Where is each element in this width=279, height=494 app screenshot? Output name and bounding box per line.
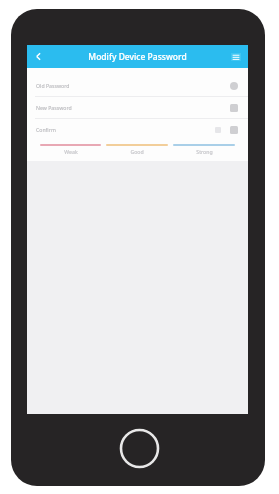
button[interactable]: Strong <box>173 148 235 155</box>
button[interactable]: Confirm <box>27 119 248 140</box>
staticText: New Password <box>36 104 72 111</box>
button[interactable]: Show password <box>227 123 240 136</box>
button[interactable]: Show password <box>227 101 240 114</box>
staticText: Modify Device Password <box>88 51 187 63</box>
button[interactable]: Good <box>106 148 168 155</box>
staticText: Weak <box>64 148 78 155</box>
button[interactable]: Weak <box>40 148 101 155</box>
button[interactable]: Clear <box>212 124 224 136</box>
staticText: Strong <box>196 148 213 155</box>
button[interactable]: Home <box>119 428 160 469</box>
staticText: Confirm <box>36 126 56 133</box>
staticText: Old Password <box>36 82 70 89</box>
button[interactable]: New Password <box>27 97 248 118</box>
button[interactable]: Back <box>27 45 49 68</box>
button[interactable]: Old Password <box>27 75 248 96</box>
staticText: Good <box>130 148 144 155</box>
button[interactable]: Menu <box>224 45 248 68</box>
button[interactable]: Show password <box>227 79 240 92</box>
